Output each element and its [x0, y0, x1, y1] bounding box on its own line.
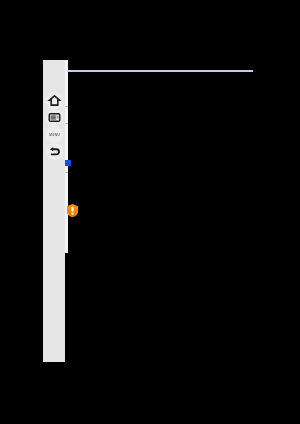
button[interactable]: Security badge	[67, 204, 78, 217]
button[interactable]: Back	[46, 143, 63, 160]
button[interactable]	[43, 60, 65, 362]
button[interactable]: Window	[46, 109, 63, 126]
staticText: MENU	[49, 132, 60, 137]
button[interactable]: Home	[46, 92, 63, 109]
button[interactable]: MENU	[46, 126, 63, 143]
